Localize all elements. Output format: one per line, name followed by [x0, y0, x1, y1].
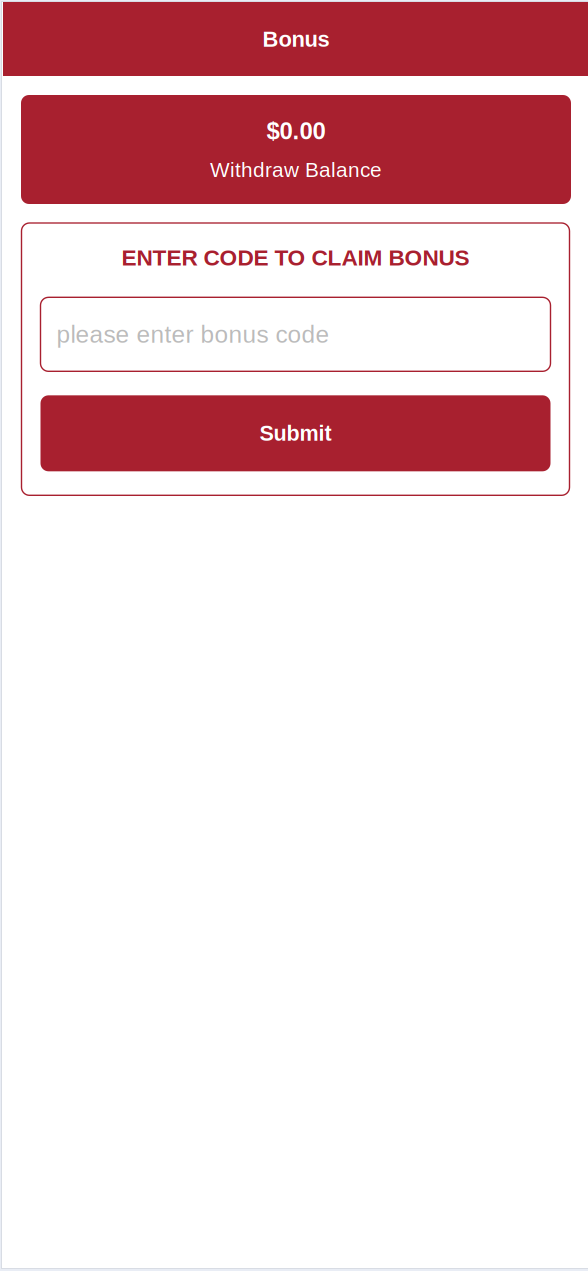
staticText: Submit [259, 421, 331, 445]
staticText: Bonus [262, 27, 329, 51]
staticText: $0.00 [266, 117, 325, 144]
button[interactable]: Bonus code [40, 297, 550, 371]
staticText: please enter bonus code [56, 321, 329, 348]
button[interactable]: Submit [40, 395, 550, 471]
staticText: Withdraw Balance [210, 158, 382, 181]
button[interactable]: $0.00 [21, 95, 571, 204]
staticText: ENTER CODE TO CLAIM BONUS [121, 245, 469, 270]
